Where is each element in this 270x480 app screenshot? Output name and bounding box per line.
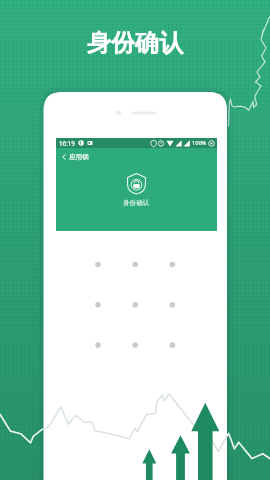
button[interactable]: Back	[58, 151, 69, 162]
staticText: 16:19	[59, 139, 75, 147]
staticText: 身份确认	[123, 199, 150, 207]
staticText: 身份确认	[87, 28, 183, 58]
staticText: 100%	[192, 139, 207, 147]
staticText: 应用锁	[69, 153, 89, 161]
